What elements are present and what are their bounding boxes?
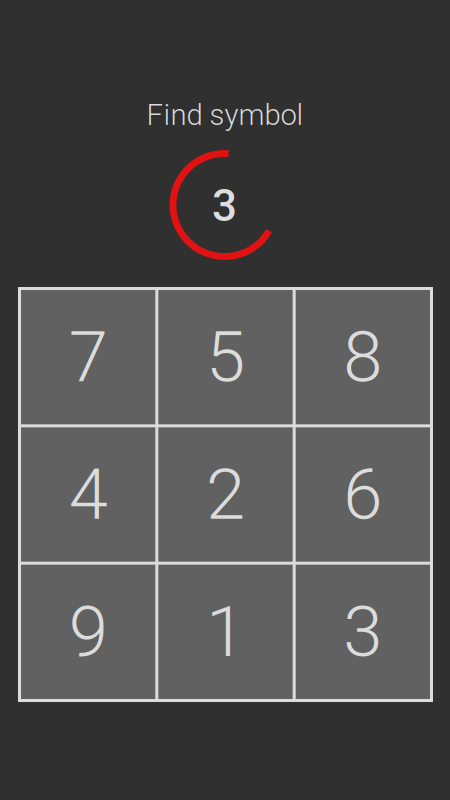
button[interactable]: 4 [21,427,155,562]
staticText: 3 [343,590,382,673]
staticText: 2 [206,453,245,536]
staticText: 7 [69,316,108,399]
button[interactable]: 3 [296,565,430,699]
staticText: 8 [343,316,382,399]
button[interactable]: 8 [296,290,430,424]
staticText: Find symbol [146,98,303,132]
staticText: 4 [69,453,108,536]
staticText: 9 [69,590,108,673]
staticText: 1 [206,590,245,673]
button[interactable]: 7 [21,290,155,424]
staticText: 6 [343,453,382,536]
button[interactable]: 5 [158,290,293,424]
staticText: 3 [212,180,237,232]
button[interactable]: 2 [158,427,293,562]
button[interactable]: 1 [158,565,293,699]
staticText: 5 [206,316,245,399]
button[interactable]: 9 [21,565,155,699]
button[interactable]: 6 [296,427,430,562]
